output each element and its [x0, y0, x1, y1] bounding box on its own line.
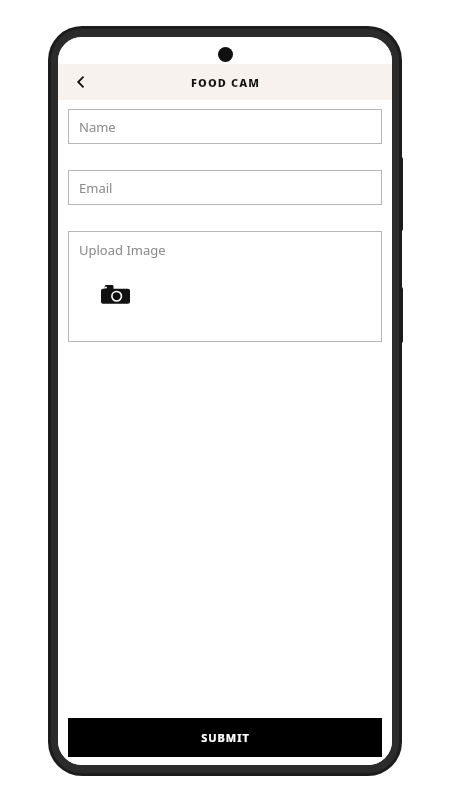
button[interactable]: SUBMIT	[68, 718, 382, 757]
staticText: Email	[79, 179, 113, 197]
button[interactable]: Back	[66, 67, 96, 97]
staticText: SUBMIT	[201, 730, 250, 745]
staticText: FOOD CAM	[191, 75, 260, 90]
staticText: Name	[79, 118, 116, 136]
button[interactable]: Upload Image	[68, 231, 382, 342]
button[interactable]: Name	[68, 109, 382, 144]
button[interactable]: Take photo	[99, 278, 131, 310]
button[interactable]: Email	[68, 170, 382, 205]
staticText: Upload Image	[79, 241, 166, 259]
